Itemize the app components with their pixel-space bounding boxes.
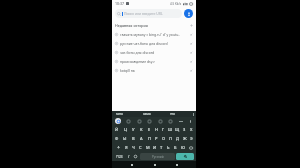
staticText: О [162,136,166,141]
button[interactable]: Л [167,134,174,143]
button[interactable]: чат-боты для discord [112,48,196,57]
staticText: скачать музыку с bing.ru" d' у youtu.. [120,32,189,37]
button[interactable]: Русский [140,153,175,160]
staticText: У [132,127,135,132]
staticText: кото [116,112,123,116]
staticText: само [143,112,151,116]
button[interactable]: Keyboard tool 5 [168,119,173,124]
button[interactable]: Я [123,143,130,152]
staticText: Ф [115,136,119,141]
staticText: С [139,145,142,150]
button[interactable]: М [144,143,151,152]
button[interactable]: Ю [179,143,186,152]
button[interactable]: Google [115,118,121,124]
button[interactable]: Language [132,153,139,160]
button[interactable]: Р [153,134,160,143]
staticText: / [128,154,130,159]
button[interactable]: скачать музыку с bing.ru" d' у youtu.. [112,30,196,39]
button[interactable]: И [151,143,158,152]
button[interactable]: само [142,112,152,116]
staticText: русские чат-боты для discord [120,41,189,46]
button[interactable]: Back [174,162,179,167]
button[interactable]: Ч [130,143,137,152]
button[interactable]: Voice search [184,9,193,18]
button[interactable]: Г [160,125,167,134]
button[interactable]: Keyboard tool 1 [126,119,131,124]
button[interactable]: Backspace [186,143,195,152]
staticText: Поиск или введите URL [124,11,163,16]
button[interactable]: А [137,134,145,143]
staticText: П [148,136,151,141]
button[interactable]: / [125,153,132,160]
staticText: Е [148,127,151,132]
staticText: Ь [167,145,170,150]
button[interactable]: Home [152,162,157,167]
staticText: М [146,145,150,150]
button[interactable]: С [137,143,144,152]
staticText: З [183,127,186,132]
staticText: Я [125,145,128,150]
button[interactable]: Щ [174,125,181,134]
button[interactable]: Ж [181,134,188,143]
staticText: Русский [152,155,164,159]
button[interactable]: Recents [129,162,134,167]
staticText: происхождение dsy-r [120,59,189,64]
button[interactable]: Н [153,125,160,134]
staticText: Б [174,145,177,150]
button[interactable]: У [129,125,137,134]
button[interactable]: З [181,125,188,134]
staticText: Р [155,136,158,141]
button[interactable]: Search [176,153,194,160]
staticText: 4.5 Kb/s [170,2,182,6]
button[interactable]: Keyboard tool 3 [147,119,152,124]
button[interactable]: О [160,134,167,143]
staticText: Щ [175,127,180,132]
button[interactable]: kotqill на [112,66,196,75]
button[interactable]: Б [172,143,179,152]
button[interactable]: Е [145,125,153,134]
button[interactable]: П [145,134,153,143]
button[interactable]: Microphone [188,119,193,124]
staticText: Ж [183,136,187,141]
staticText: Ч [132,145,135,150]
staticText: И [153,145,157,150]
button[interactable]: это [169,112,176,116]
staticText: Г [162,127,165,132]
staticText: Т [160,145,163,150]
button[interactable]: Keyboard tool 2 [137,119,142,124]
button[interactable]: Й [113,125,121,134]
staticText: Й [115,127,119,132]
staticText: К [140,127,143,132]
button[interactable]: К [137,125,145,134]
button[interactable]: Ь [165,143,172,152]
button[interactable]: Ф [113,134,121,143]
button[interactable]: Э [188,134,195,143]
staticText: Л [169,136,172,141]
staticText: Ц [124,127,127,132]
staticText: Н [155,127,158,132]
button[interactable]: ?123 [114,153,125,160]
staticText: Э [190,136,193,141]
button[interactable]: русские чат-боты для discord [112,39,196,48]
button[interactable]: Х [188,125,195,134]
button[interactable]: кото [115,112,124,116]
button[interactable]: Поиск или введите URL [115,9,182,18]
staticText: чат-боты для discord [120,50,189,55]
staticText: Ы [123,136,127,141]
staticText: Ю [181,145,185,150]
staticText: это [170,112,175,116]
staticText: 10:37 [115,1,124,6]
staticText: Х [190,127,193,132]
staticText: Д [176,136,179,141]
button[interactable]: происхождение dsy-r [112,57,196,66]
staticText: Ш [168,127,173,132]
staticText: ?123 [116,155,123,159]
button[interactable]: Ш [167,125,174,134]
button[interactable]: Ы [121,134,129,143]
button[interactable]: В [129,134,137,143]
button[interactable]: Д [174,134,181,143]
button[interactable]: Ц [121,125,129,134]
button[interactable]: Shift [113,143,123,152]
button[interactable]: Т [158,143,165,152]
button[interactable]: Keyboard tool 4 [158,119,163,124]
